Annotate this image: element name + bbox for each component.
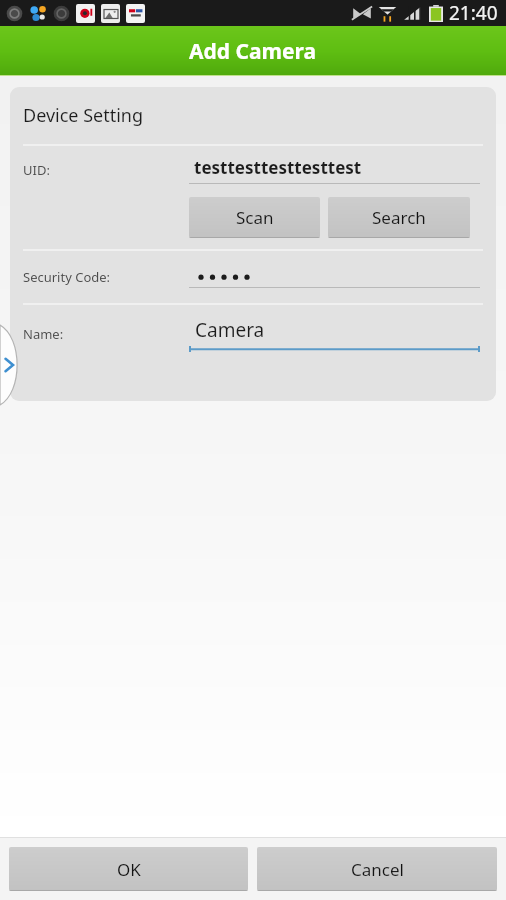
button[interactable]: Cancel bbox=[257, 847, 497, 891]
staticText: Cancel bbox=[351, 858, 404, 881]
button[interactable]: Search bbox=[328, 197, 470, 238]
staticText: 21:40 bbox=[449, 0, 498, 26]
button[interactable]: OK bbox=[9, 847, 248, 891]
staticText: Camera bbox=[195, 317, 265, 343]
staticText: Name: bbox=[23, 325, 64, 343]
staticText: Device Setting bbox=[23, 103, 144, 128]
staticText: Scan bbox=[236, 206, 274, 229]
staticText: OK bbox=[117, 858, 141, 881]
staticText: testtesttesttesttest bbox=[194, 156, 362, 179]
staticText: Search bbox=[372, 206, 426, 229]
button[interactable]: Open navigation drawer bbox=[0, 325, 24, 405]
staticText: UID: bbox=[23, 161, 50, 179]
staticText: Add Camera bbox=[189, 37, 317, 66]
staticText: Security Code: bbox=[23, 268, 111, 286]
button[interactable]: Scan bbox=[189, 197, 320, 238]
